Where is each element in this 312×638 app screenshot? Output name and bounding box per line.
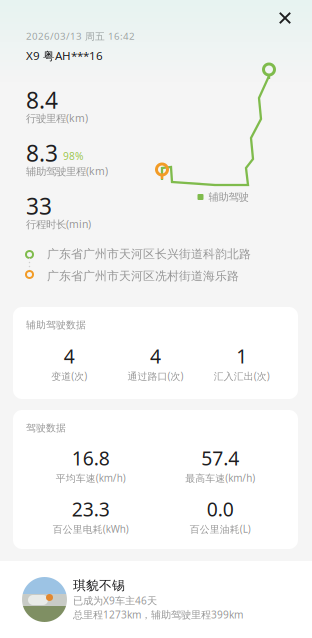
staticText: 最高车速(km/h): [185, 471, 255, 484]
staticText: 33: [26, 191, 52, 221]
staticText: 57.4: [201, 445, 239, 471]
staticText: 广东省广州市天河区冼村街道海乐路: [47, 269, 239, 283]
staticText: 琪貌不锡: [73, 578, 125, 593]
staticText: 4: [150, 343, 161, 369]
staticText: 行程时长(min): [26, 217, 91, 231]
staticText: 总里程1273km，辅助驾驶里程399km: [73, 608, 243, 621]
staticText: 1: [236, 343, 247, 369]
staticText: 8.4: [26, 85, 58, 115]
staticText: 16.8: [72, 445, 110, 471]
staticText: 8.3: [26, 138, 58, 168]
button[interactable]: 关闭: [268, 1, 302, 35]
staticText: 辅助驾驶数据: [26, 319, 86, 331]
staticText: 0.0: [207, 496, 234, 522]
staticText: 平均车速(km/h): [56, 471, 126, 484]
button[interactable]: 琪貌不锡: [0, 561, 312, 638]
staticText: 已成为X9车主46天: [73, 594, 157, 607]
staticText: 98%: [63, 149, 83, 163]
staticText: 通过路口(次): [127, 369, 183, 382]
staticText: 辅助驾驶里程(km): [26, 164, 108, 178]
staticText: X9 粤AH***16: [26, 48, 103, 63]
staticText: 辅助驾驶: [208, 191, 248, 203]
staticText: 汇入汇出(次): [214, 369, 270, 382]
staticText: 驾驶数据: [26, 422, 66, 434]
staticText: 百公里油耗(L): [190, 522, 251, 535]
staticText: 变道(次): [51, 369, 87, 382]
staticText: 4: [64, 343, 75, 369]
staticText: 百公里电耗(kWh): [53, 522, 129, 535]
staticText: 行驶里程(km): [26, 111, 88, 125]
staticText: 2026/03/13 周五 16:42: [26, 29, 135, 42]
staticText: 广东省广州市天河区长兴街道科韵北路: [47, 247, 251, 261]
staticText: 23.3: [72, 496, 110, 522]
